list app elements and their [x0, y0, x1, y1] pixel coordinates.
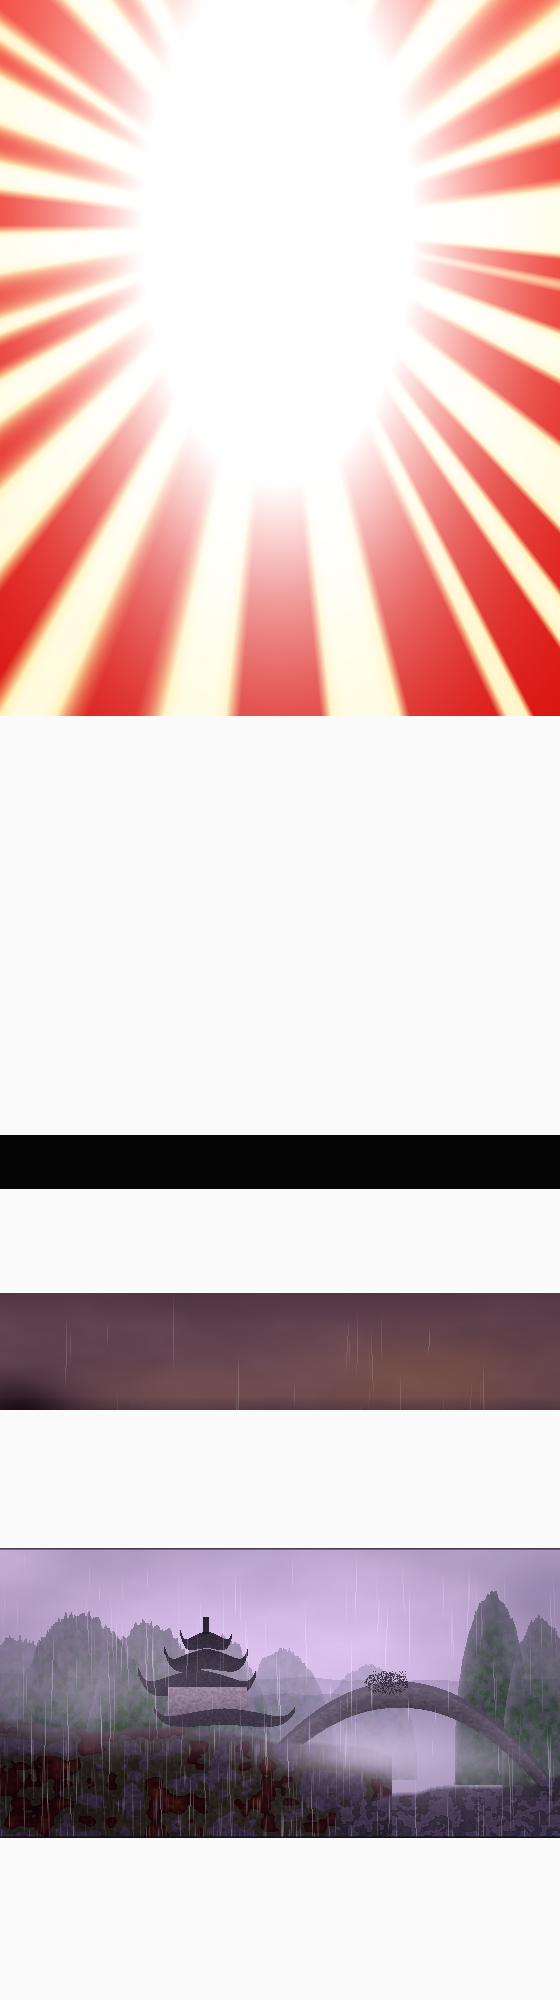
button[interactable]: Comic panel 4 [0, 1548, 560, 1838]
button[interactable]: Comic panel 1 [0, 0, 560, 716]
button[interactable]: Comic panel 3 [0, 1293, 560, 1410]
